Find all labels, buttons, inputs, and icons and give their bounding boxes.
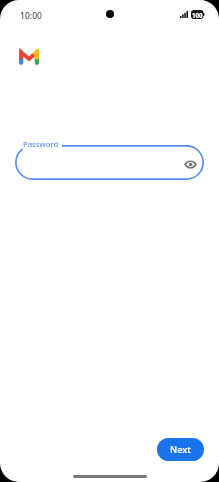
staticText: Password	[23, 139, 59, 150]
staticText: 100	[192, 11, 203, 19]
button[interactable]: Next	[157, 438, 204, 461]
button[interactable]: Show password	[180, 154, 200, 174]
button[interactable]: Password	[15, 145, 204, 180]
staticText: 10:00	[20, 10, 43, 22]
staticText: Next	[170, 443, 191, 456]
